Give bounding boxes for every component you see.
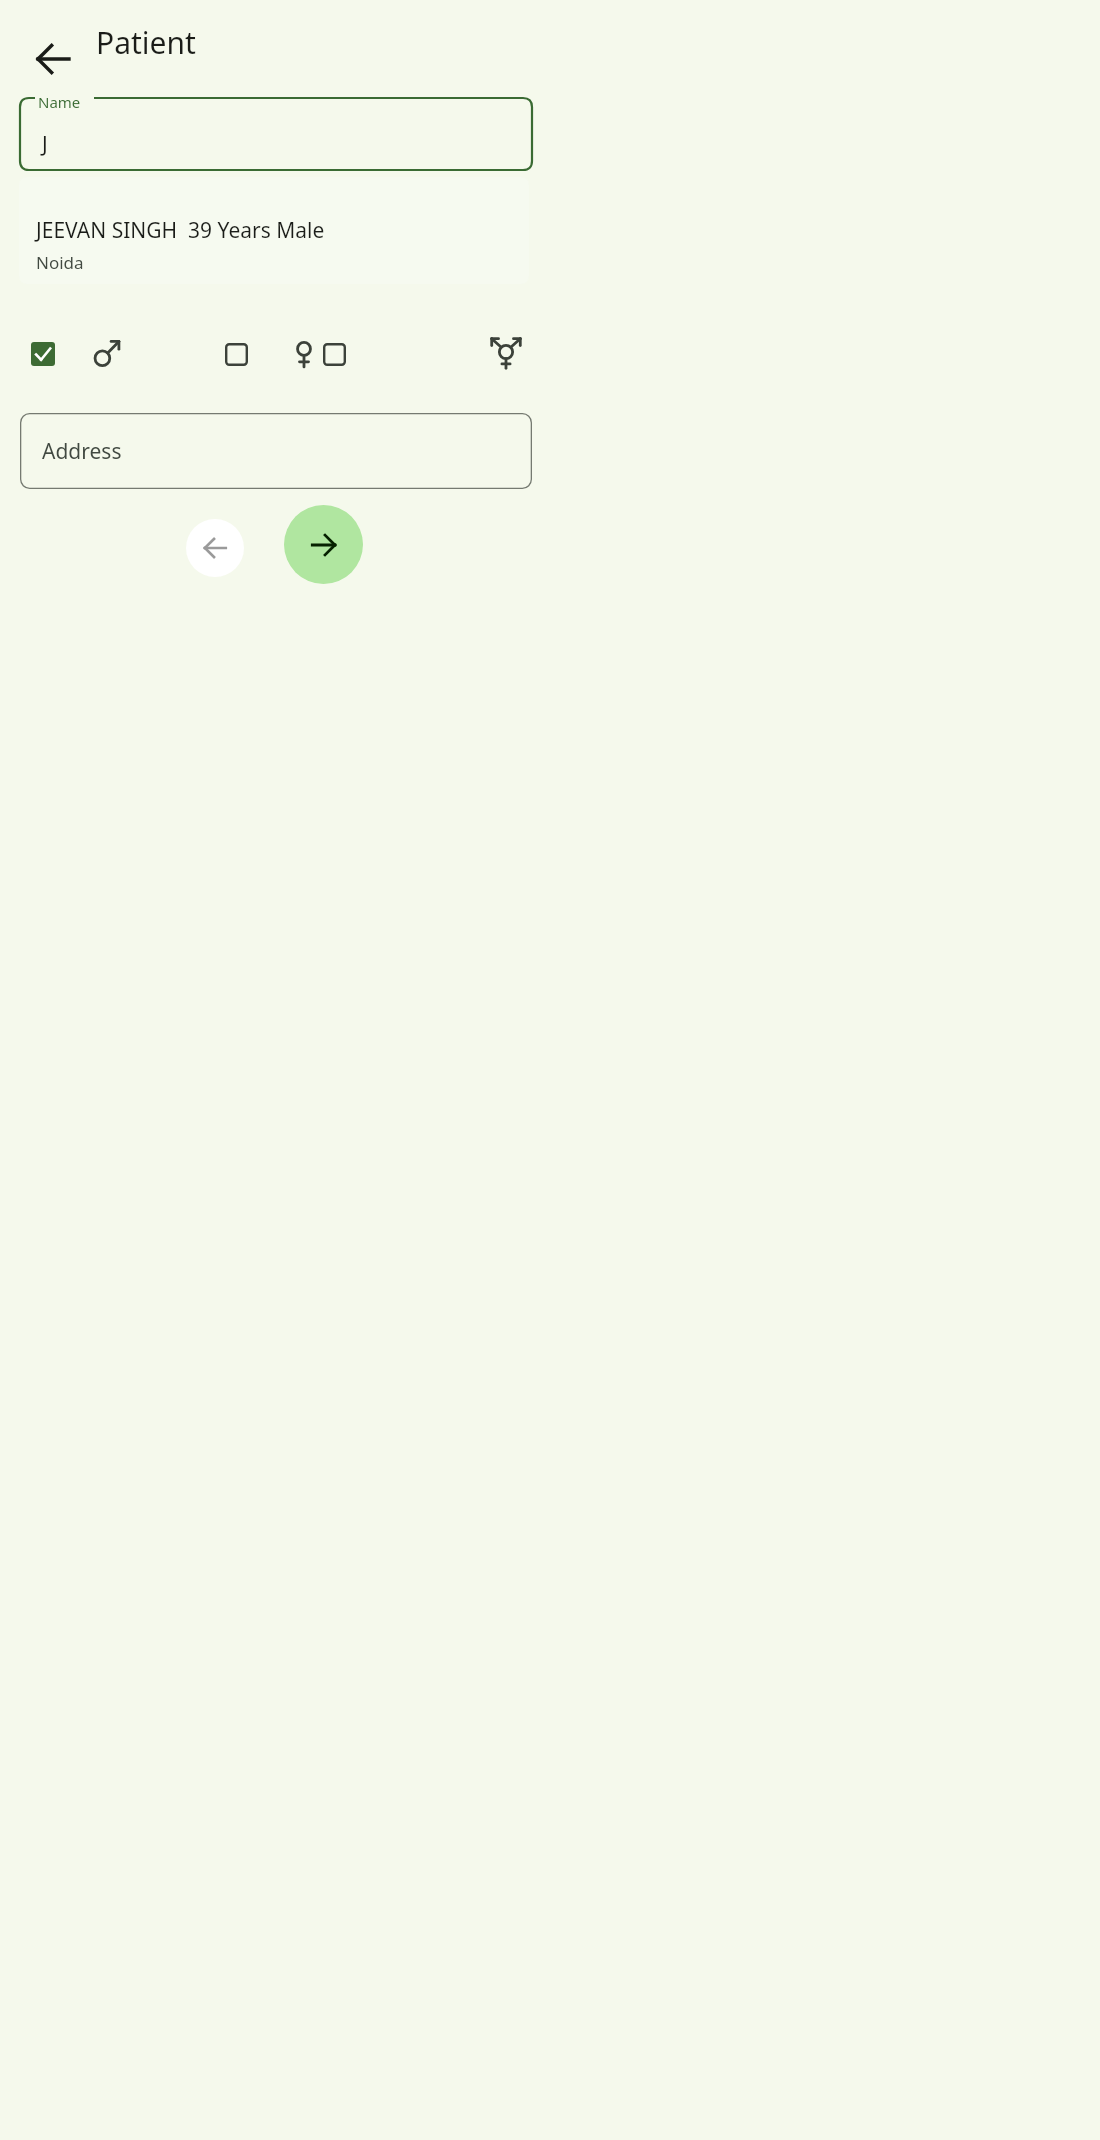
staticText: J — [42, 130, 48, 159]
button[interactable]: Female — [214, 332, 258, 376]
staticText: JEEVAN SINGH 39 Years Male — [36, 216, 325, 245]
button[interactable]: Male — [83, 331, 129, 377]
button[interactable]: Female — [281, 331, 327, 377]
staticText: Name — [38, 92, 81, 112]
staticText: Noida — [36, 251, 84, 274]
button[interactable]: Address — [20, 413, 532, 489]
button[interactable]: Previous — [186, 519, 244, 577]
staticText: Patient — [96, 22, 196, 63]
button[interactable]: JEEVAN SINGH 39 Years Male — [19, 177, 529, 284]
button[interactable]: Other gender — [312, 332, 356, 376]
button[interactable]: Back — [18, 24, 88, 94]
button[interactable]: Transgender — [481, 328, 531, 378]
staticText: Address — [42, 437, 122, 466]
button[interactable]: Next — [284, 505, 363, 584]
button[interactable]: Male selected — [21, 332, 65, 376]
